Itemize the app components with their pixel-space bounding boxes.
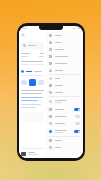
button[interactable] [47, 144, 82, 151]
button[interactable]: Toggle [74, 122, 80, 125]
button[interactable]: Selected [29, 79, 36, 86]
button[interactable]: Toggle [74, 108, 80, 111]
button[interactable] [47, 60, 82, 67]
button[interactable]: Toggle [47, 106, 82, 113]
button[interactable] [21, 42, 44, 49]
button[interactable] [38, 80, 44, 85]
button[interactable] [47, 89, 82, 96]
button[interactable] [47, 97, 82, 106]
button[interactable] [47, 82, 82, 89]
button[interactable]: Toggle [47, 120, 82, 127]
button[interactable] [47, 32, 82, 39]
button[interactable] [47, 46, 82, 53]
button[interactable] [47, 67, 82, 74]
button[interactable]: Toggle [74, 130, 80, 133]
button[interactable] [47, 75, 82, 82]
button[interactable]: Menu [21, 33, 25, 37]
button[interactable] [47, 39, 82, 46]
button[interactable] [21, 80, 27, 85]
button[interactable]: Toggle [74, 115, 80, 118]
button[interactable]: App icon [21, 152, 26, 156]
button[interactable]: Toggle [47, 127, 82, 136]
button[interactable] [47, 137, 82, 144]
button[interactable] [47, 53, 82, 60]
button[interactable]: Toggle [47, 113, 82, 120]
